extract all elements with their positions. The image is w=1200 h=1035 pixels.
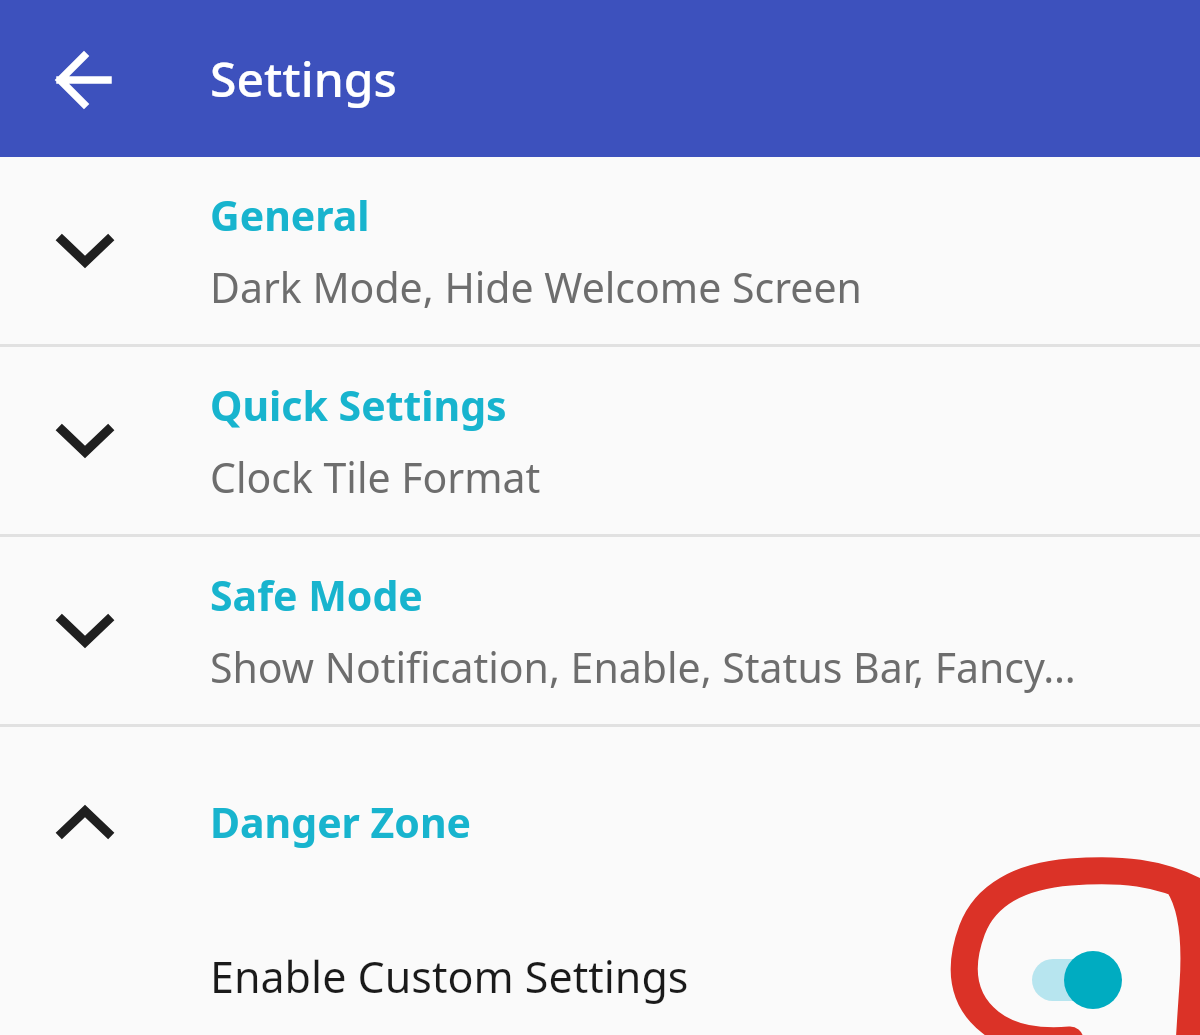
staticText: General xyxy=(210,187,370,243)
staticText: Enable Custom Settings xyxy=(210,947,1010,1006)
staticText: Safe Mode xyxy=(210,567,423,623)
staticText: Dark Mode, Hide Welcome Screen xyxy=(210,259,862,315)
staticText: Show Notification, Enable, Status Bar, F… xyxy=(210,639,1076,695)
button[interactable]: Danger Zone xyxy=(0,727,1200,917)
staticText: Danger Zone xyxy=(210,794,472,850)
button[interactable]: Safe Mode xyxy=(0,537,1200,724)
button[interactable]: General xyxy=(0,157,1200,344)
staticText: Clock Tile Format xyxy=(210,449,541,505)
staticText: Settings xyxy=(210,46,397,111)
staticText: Quick Settings xyxy=(210,377,507,433)
button[interactable]: Back xyxy=(36,31,132,127)
button[interactable]: Quick Settings xyxy=(0,347,1200,534)
button[interactable]: Enable Custom Settings xyxy=(0,917,1200,1035)
